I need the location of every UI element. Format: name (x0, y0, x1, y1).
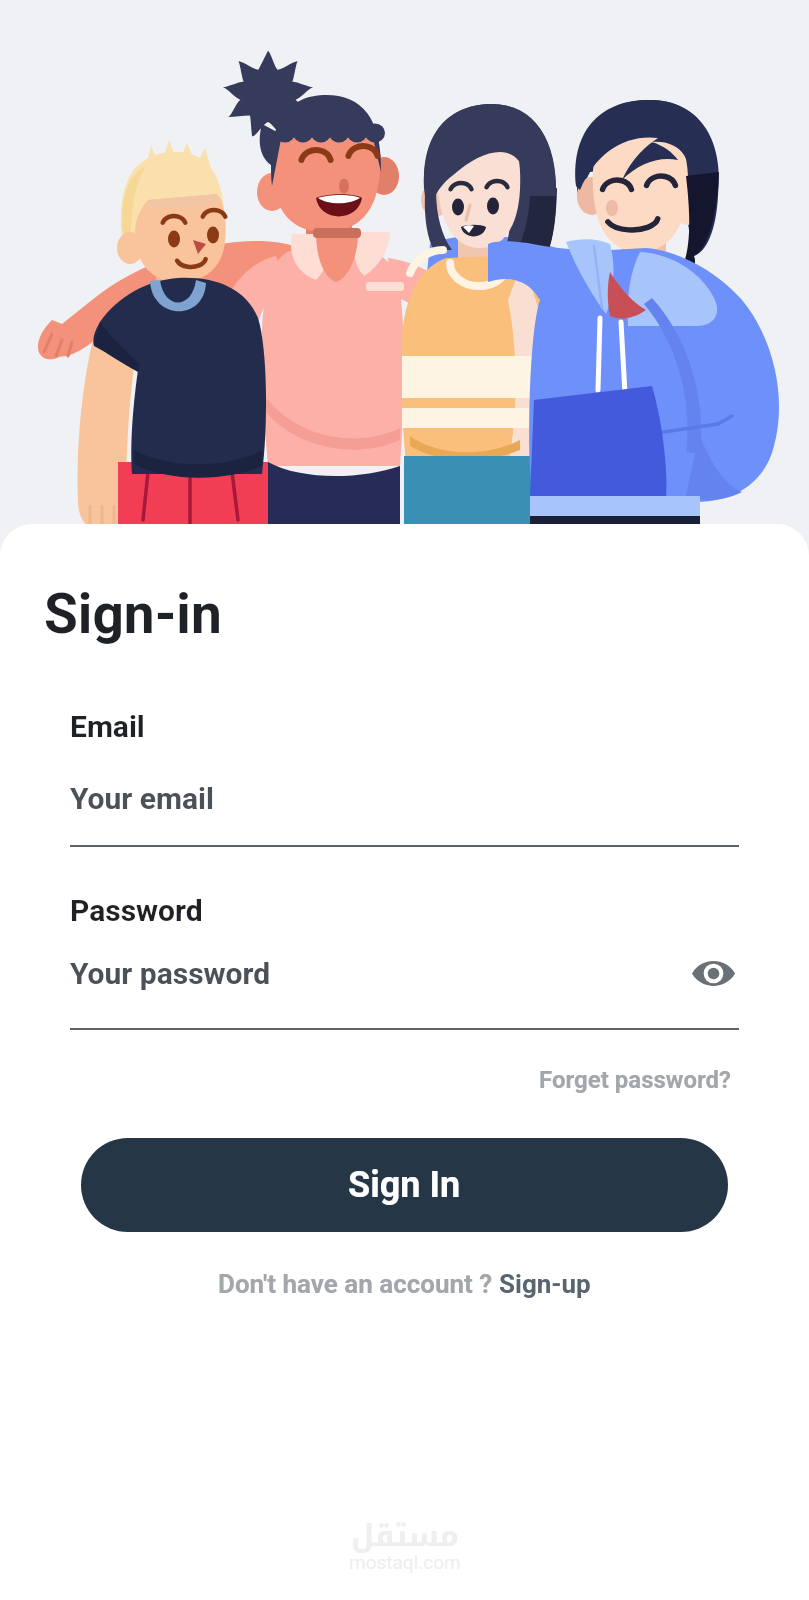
button[interactable]: Sign-up (499, 1269, 591, 1299)
staticText: Don't have an account ? (218, 1269, 499, 1299)
staticText: Your email (70, 781, 214, 816)
staticText: Password (70, 893, 203, 928)
staticText: Sign In (348, 1164, 461, 1206)
button[interactable]: Show password (687, 947, 739, 999)
staticText: mostaql.com (349, 1551, 461, 1573)
staticText: Sign-in (44, 582, 222, 646)
staticText: Your password (70, 956, 271, 991)
button[interactable]: Forget password? (539, 1066, 809, 1094)
button[interactable]: Sign In (81, 1138, 728, 1232)
staticText: Email (70, 709, 145, 744)
staticText: مستقل (351, 1508, 459, 1565)
